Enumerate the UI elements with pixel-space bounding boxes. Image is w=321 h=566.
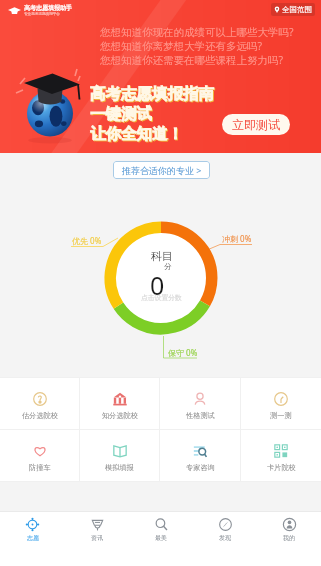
button[interactable]: 性格测试 bbox=[160, 378, 240, 429]
button[interactable]: 测一测 bbox=[241, 378, 321, 429]
staticText: 立即测试 bbox=[232, 117, 280, 132]
button[interactable]: 我的 bbox=[257, 512, 321, 566]
staticText: 高考志愿填报助手 bbox=[24, 4, 72, 12]
staticText: 分 bbox=[164, 262, 172, 271]
staticText: 您想知道你现在的成绩可以上哪些大学吗? bbox=[100, 25, 294, 39]
staticText: 我的 bbox=[283, 534, 295, 542]
button[interactable]: 发现 bbox=[193, 512, 257, 566]
button[interactable]: 防撞车 bbox=[0, 430, 79, 481]
staticText: 模拟填报 bbox=[105, 463, 134, 472]
button[interactable]: 志愿 bbox=[0, 512, 65, 566]
staticText: 一键测试 bbox=[91, 105, 153, 125]
staticText: 高考志愿填报指南 bbox=[90, 84, 214, 104]
staticText: 点击设置分数 bbox=[141, 293, 182, 302]
staticText: 知分选院校 bbox=[102, 411, 138, 420]
staticText: 资讯 bbox=[91, 534, 103, 542]
staticText: 您想知道你还需要在哪些课程上努力吗? bbox=[100, 53, 284, 67]
staticText: 优先 0% bbox=[72, 235, 102, 246]
staticText: 全国范围 bbox=[282, 5, 312, 14]
staticText: 发现 bbox=[219, 534, 231, 542]
button[interactable]: 模拟填报 bbox=[80, 430, 159, 481]
staticText: 防撞车 bbox=[29, 463, 51, 472]
button[interactable]: 最美 bbox=[129, 512, 193, 566]
button[interactable]: 专家咨询 bbox=[160, 430, 240, 481]
staticText: 保守 0% bbox=[168, 347, 198, 358]
staticText: 让你全知道！ bbox=[91, 125, 184, 145]
button[interactable]: 高考志愿填报助手 bbox=[8, 4, 72, 17]
staticText: 推荐合适你的专业 > bbox=[122, 164, 202, 176]
staticText: 测一测 bbox=[270, 411, 292, 420]
staticText: 估分选院校 bbox=[22, 411, 58, 420]
staticText: 专业高考志愿填报平台 bbox=[24, 12, 60, 17]
button[interactable]: 知分选院校 bbox=[80, 378, 159, 429]
staticText: 高考志愿填报指南 bbox=[91, 85, 215, 105]
other: Location bbox=[274, 6, 280, 13]
button[interactable]: 推荐合适你的专业 > bbox=[113, 161, 210, 179]
staticText: 最美 bbox=[155, 534, 167, 542]
staticText: 专家咨询 bbox=[186, 463, 215, 472]
staticText: 性格测试 bbox=[186, 411, 215, 420]
button[interactable]: 资讯 bbox=[65, 512, 129, 566]
button[interactable]: 科目 bbox=[111, 248, 211, 306]
staticText: 您想知道你离梦想大学还有多远吗? bbox=[100, 39, 263, 53]
button[interactable]: 估分选院校 bbox=[0, 378, 79, 429]
button[interactable]: 卡片院校 bbox=[241, 430, 321, 481]
staticText: 冲刺 0% bbox=[222, 233, 252, 244]
staticText: 让你全知道！ bbox=[90, 124, 183, 144]
staticText: 科目 bbox=[151, 249, 173, 263]
staticText: 0 bbox=[150, 268, 165, 302]
button[interactable]: Location bbox=[274, 5, 312, 14]
staticText: 卡片院校 bbox=[267, 463, 296, 472]
staticText: 志愿 bbox=[27, 534, 39, 542]
staticText: 一键测试 bbox=[90, 104, 152, 124]
button[interactable]: 立即测试 bbox=[222, 114, 290, 135]
